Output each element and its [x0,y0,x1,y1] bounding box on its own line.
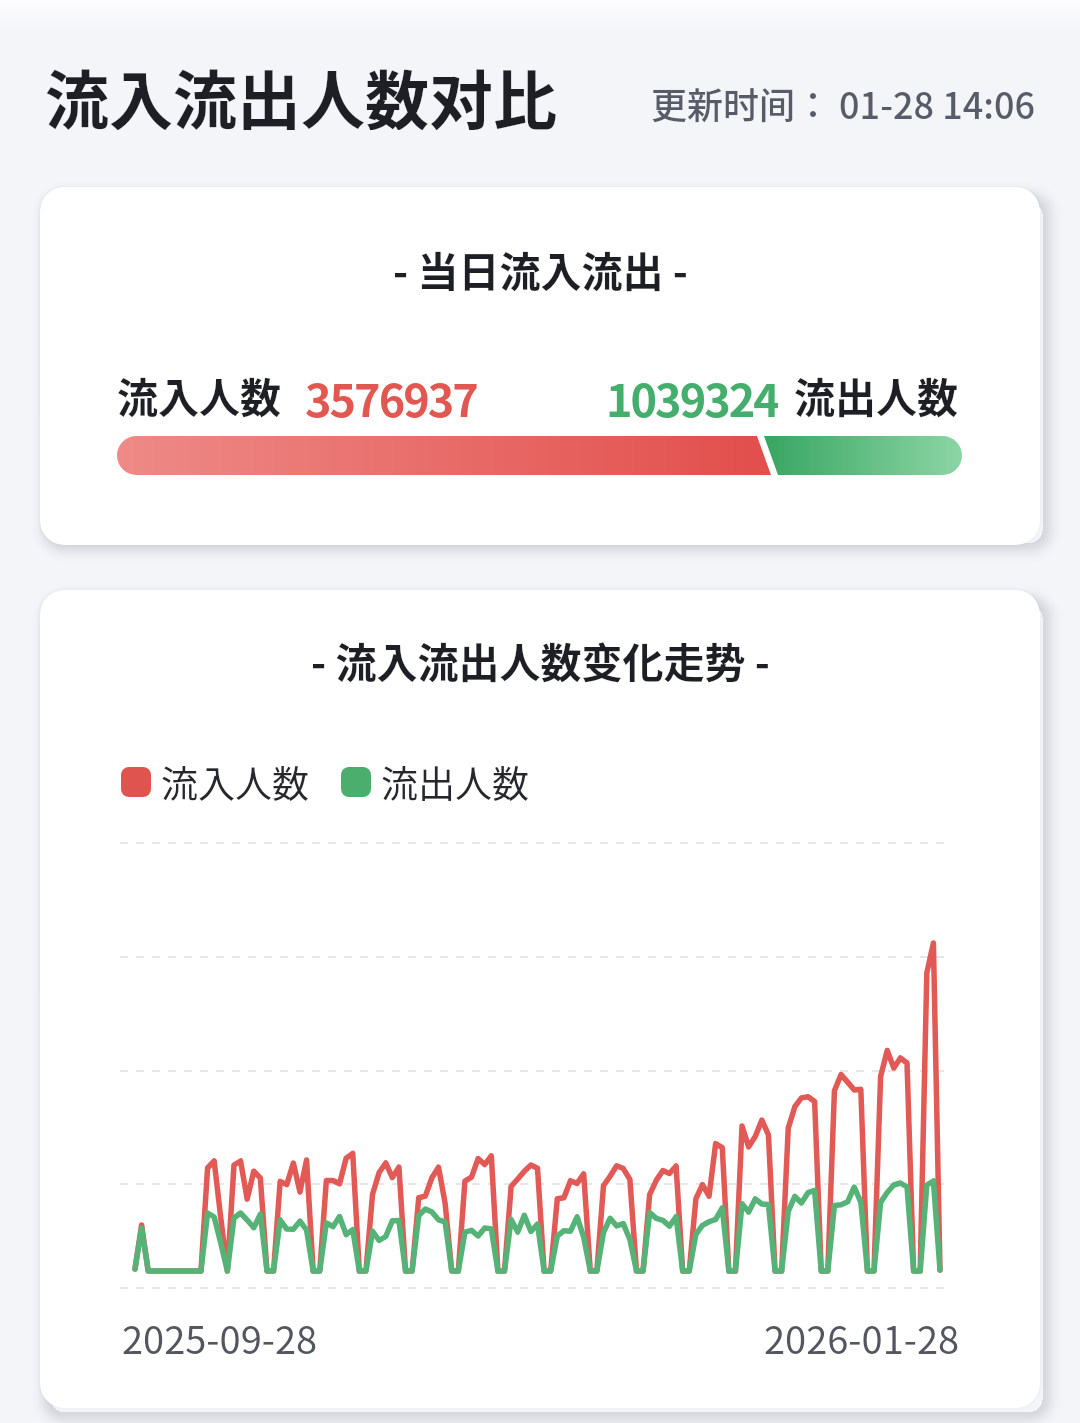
staticText: 更新时间： 01-28 14:06 [651,77,1035,129]
staticText: 1039324 [606,365,778,421]
staticText: 流入人数 [117,365,281,421]
staticText: 流入人数 [161,755,309,809]
staticText: 流出人数 [794,365,958,421]
staticText: - 流入流出人数变化走势 - [311,630,770,686]
button[interactable]: - 当日流入流出 - [40,187,1040,545]
staticText: 2025-09-28 [122,1310,318,1364]
button[interactable]: - 流入流出人数变化走势 - [40,590,1040,1408]
staticText: 流出人数 [381,755,529,809]
staticText: 流入流出人数对比 [45,50,557,130]
staticText: 3576937 [305,365,477,421]
staticText: 2026-01-28 [764,1310,960,1364]
staticText: - 当日流入流出 - [393,239,688,295]
